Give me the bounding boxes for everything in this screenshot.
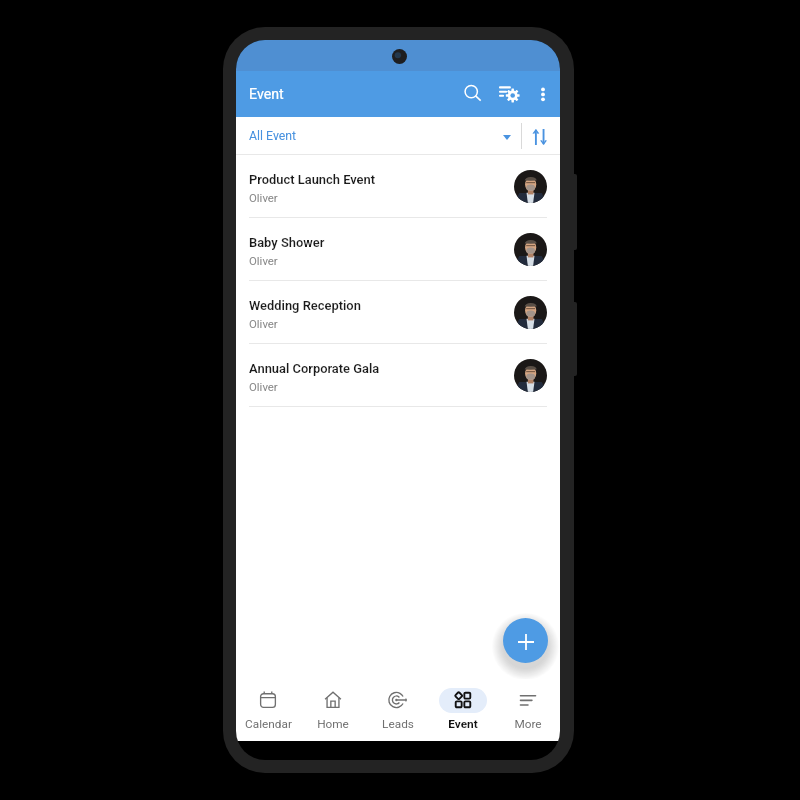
staticText: Product Launch Event bbox=[249, 172, 376, 187]
staticText: More bbox=[514, 717, 542, 731]
button[interactable]: Search bbox=[454, 76, 490, 112]
button[interactable]: Filter settings bbox=[492, 76, 528, 112]
button[interactable]: More bbox=[495, 678, 560, 740]
staticText: Event bbox=[249, 86, 284, 103]
staticText: Baby Shower bbox=[249, 235, 325, 250]
staticText: Calendar bbox=[245, 717, 292, 731]
button[interactable]: Add event bbox=[503, 618, 548, 663]
staticText: Leads bbox=[382, 717, 414, 731]
button[interactable]: Event bbox=[430, 678, 495, 740]
staticText: Wedding Reception bbox=[249, 298, 361, 313]
staticText: Annual Corporate Gala bbox=[249, 361, 380, 376]
button[interactable]: Sort bbox=[522, 117, 560, 155]
button[interactable]: Leads bbox=[365, 678, 430, 740]
button[interactable]: Calendar bbox=[236, 678, 300, 740]
staticText: Oliver bbox=[249, 254, 278, 267]
button[interactable]: More options bbox=[527, 76, 559, 108]
staticText: Oliver bbox=[249, 191, 278, 204]
button[interactable]: Home bbox=[300, 678, 365, 740]
staticText: Home bbox=[317, 717, 349, 731]
button[interactable]: Product Launch Event bbox=[236, 155, 560, 217]
staticText: Event bbox=[448, 717, 478, 731]
button[interactable]: Baby Shower bbox=[236, 218, 560, 280]
button[interactable]: Annual Corporate Gala bbox=[236, 344, 560, 406]
button[interactable]: All Event bbox=[236, 117, 521, 155]
staticText: Oliver bbox=[249, 380, 278, 393]
staticText: All Event bbox=[249, 129, 297, 143]
button[interactable]: Wedding Reception bbox=[236, 281, 560, 343]
staticText: Oliver bbox=[249, 317, 278, 330]
